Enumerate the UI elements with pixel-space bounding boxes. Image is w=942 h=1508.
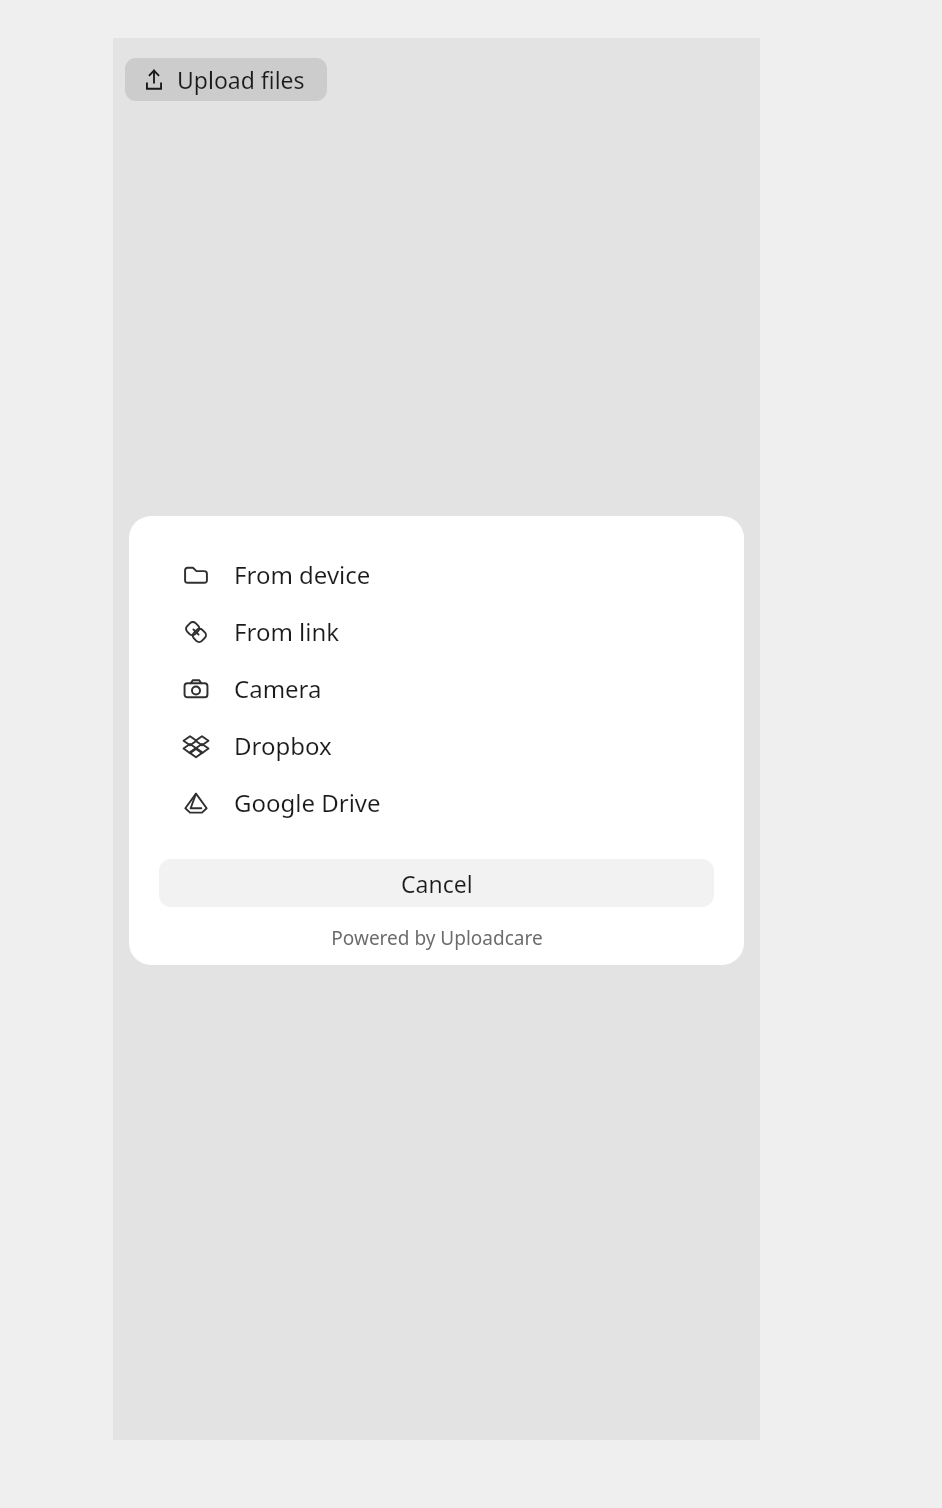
button[interactable]: Upload files	[125, 58, 327, 101]
staticText: From link	[234, 615, 340, 648]
button[interactable]: Google Drive	[129, 774, 744, 831]
staticText: From device	[234, 558, 371, 591]
staticText: Upload files	[177, 64, 305, 95]
staticText: Camera	[234, 672, 322, 705]
button[interactable]: Cancel	[159, 859, 714, 907]
staticText: Powered by Uploadcare	[331, 925, 543, 951]
staticText: Cancel	[401, 868, 473, 899]
button[interactable]: From link	[129, 603, 744, 660]
staticText: Dropbox	[234, 729, 332, 762]
button[interactable]: From device	[129, 546, 744, 603]
button[interactable]: Camera	[129, 660, 744, 717]
button[interactable]: Dropbox	[129, 717, 744, 774]
staticText: Google Drive	[234, 786, 381, 819]
